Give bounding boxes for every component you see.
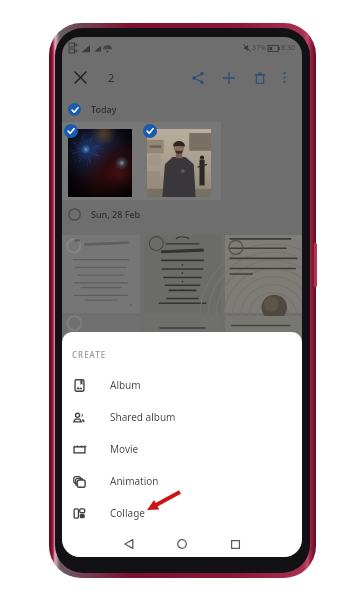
staticText: 8:30 xyxy=(281,43,295,53)
button[interactable]: Share xyxy=(184,64,211,91)
staticText: Collage xyxy=(110,506,145,520)
button[interactable]: Delete xyxy=(246,64,273,91)
staticText: 37% xyxy=(252,43,266,53)
button[interactable]: Photo xyxy=(62,235,140,313)
staticText: CREATE xyxy=(72,349,107,360)
button[interactable]: Movie xyxy=(62,433,302,465)
button[interactable]: Collage xyxy=(62,497,302,529)
button[interactable]: Animation xyxy=(62,465,302,497)
button[interactable]: More options xyxy=(273,66,295,88)
button[interactable]: Back xyxy=(117,532,141,556)
button[interactable]: Photo xyxy=(225,235,302,313)
staticText: Album xyxy=(110,378,141,392)
button[interactable]: Home xyxy=(170,532,194,556)
button[interactable]: Photo xyxy=(68,129,132,197)
staticText: Animation xyxy=(110,474,159,488)
button[interactable]: Album xyxy=(62,369,302,401)
button[interactable]: Add xyxy=(215,64,242,91)
button[interactable]: Select Today xyxy=(63,98,85,120)
button[interactable]: Photo xyxy=(144,316,221,356)
button[interactable]: Photo xyxy=(225,316,302,356)
staticText: 2 xyxy=(108,70,115,85)
button[interactable]: Photo xyxy=(62,316,140,356)
button[interactable]: Shared album xyxy=(62,401,302,433)
staticText: Sun, 28 Feb xyxy=(91,208,141,220)
staticText: Today xyxy=(91,103,117,115)
button[interactable]: Recents xyxy=(223,532,247,556)
button[interactable]: Select Sun, 28 Feb xyxy=(63,203,85,225)
button[interactable]: Photo xyxy=(147,129,211,197)
staticText: Movie xyxy=(110,442,139,456)
button[interactable]: Close xyxy=(68,65,93,90)
staticText: Shared album xyxy=(110,410,176,424)
button[interactable]: Photo xyxy=(144,235,221,313)
